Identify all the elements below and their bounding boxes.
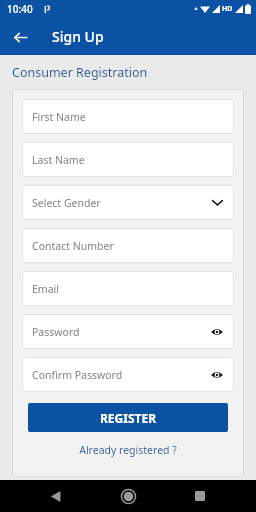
button[interactable]: Already registered ? bbox=[22, 443, 234, 457]
staticText: Select Gender bbox=[32, 196, 211, 210]
button[interactable]: REGISTER bbox=[28, 403, 228, 432]
button[interactable]: Toggle password visibility bbox=[209, 324, 224, 339]
staticText: First Name bbox=[32, 110, 224, 124]
button[interactable]: Email bbox=[22, 271, 234, 306]
staticText: Consumer Registration bbox=[12, 64, 148, 81]
button[interactable]: Last Name bbox=[22, 142, 234, 177]
button[interactable]: Recent apps bbox=[184, 480, 216, 512]
staticText: HD bbox=[222, 4, 233, 14]
staticText: Email bbox=[32, 282, 224, 296]
button[interactable]: Back bbox=[7, 24, 33, 50]
staticText: Password bbox=[32, 325, 209, 339]
button[interactable]: Contact Number bbox=[22, 228, 234, 263]
button[interactable]: Password bbox=[22, 314, 234, 349]
staticText: Already registered ? bbox=[79, 443, 177, 457]
button[interactable]: Select Gender bbox=[22, 185, 234, 220]
button[interactable]: Toggle password visibility bbox=[209, 367, 224, 382]
staticText: Contact Number bbox=[32, 239, 224, 253]
other: Open gender list bbox=[211, 196, 224, 209]
button[interactable]: Confirm Password bbox=[22, 357, 234, 392]
staticText: 10:40 bbox=[7, 2, 33, 16]
staticText: Sign Up bbox=[52, 27, 104, 46]
button[interactable]: Back bbox=[40, 480, 72, 512]
staticText: Last Name bbox=[32, 153, 224, 167]
button[interactable]: First Name bbox=[22, 99, 234, 134]
staticText: REGISTER bbox=[100, 410, 157, 426]
staticText: Confirm Password bbox=[32, 368, 209, 382]
button[interactable]: Home bbox=[112, 480, 144, 512]
